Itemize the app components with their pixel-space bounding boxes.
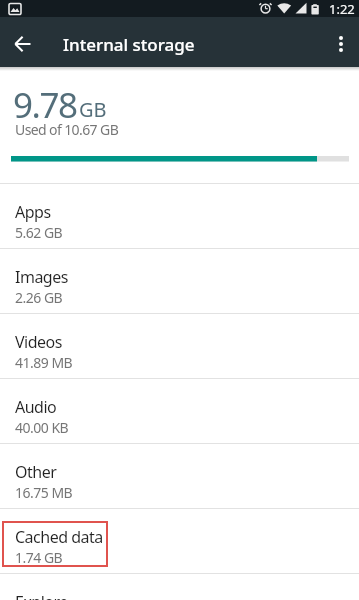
- button[interactable]: Other: [0, 444, 359, 509]
- button[interactable]: [7, 28, 39, 60]
- button[interactable]: Videos: [0, 314, 359, 379]
- staticText: 40.00 KB: [15, 418, 69, 437]
- staticText: Other: [15, 461, 57, 483]
- staticText: Explore: [15, 591, 68, 600]
- staticText: Videos: [15, 331, 62, 353]
- staticText: 16.75 MB: [15, 483, 73, 502]
- staticText: Apps: [15, 201, 51, 223]
- button[interactable]: Explore: [0, 574, 359, 600]
- staticText: 5.62 GB: [15, 223, 63, 242]
- staticText: 1:22: [329, 0, 355, 17]
- staticText: GB: [79, 96, 107, 123]
- button[interactable]: Audio: [0, 379, 359, 444]
- staticText: Images: [15, 266, 68, 288]
- button[interactable]: Cached data: [0, 509, 359, 574]
- staticText: Audio: [15, 396, 57, 418]
- button[interactable]: [327, 30, 355, 58]
- staticText: 1.74 GB: [15, 548, 63, 567]
- staticText: 41.89 MB: [15, 353, 73, 372]
- staticText: Cached data: [15, 526, 103, 548]
- staticText: Used of 10.67 GB: [15, 120, 119, 139]
- button[interactable]: Images: [0, 249, 359, 314]
- staticText: Internal storage: [63, 33, 195, 56]
- button[interactable]: Apps: [0, 184, 359, 249]
- staticText: 9.78: [13, 81, 77, 129]
- staticText: 2.26 GB: [15, 288, 63, 307]
